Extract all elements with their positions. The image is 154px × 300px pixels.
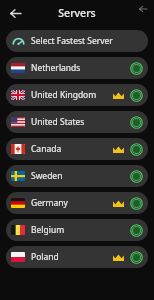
staticText: United Kingdom <box>31 89 97 101</box>
button[interactable]: Netherlands <box>6 57 148 79</box>
button[interactable]: Germany <box>6 192 148 214</box>
staticText: Belgium <box>31 224 65 236</box>
staticText: Poland <box>31 251 59 263</box>
button[interactable]: Sweden <box>6 165 148 187</box>
button[interactable]: Canada <box>6 138 148 160</box>
staticText: Canada <box>31 143 62 155</box>
staticText: Netherlands <box>31 62 81 74</box>
button[interactable]: United States <box>6 111 148 133</box>
button[interactable]: Select Fastest Server <box>6 30 148 52</box>
staticText: Germany <box>31 197 68 209</box>
staticText: Select Fastest Server <box>31 35 113 47</box>
staticText: Sweden <box>31 170 63 182</box>
staticText: Servers <box>58 6 96 20</box>
button[interactable]: Back <box>136 2 150 16</box>
button[interactable]: Poland <box>6 246 148 268</box>
button[interactable]: Belgium <box>6 219 148 241</box>
staticText: United States <box>31 116 85 128</box>
button[interactable]: United Kingdom <box>6 84 148 106</box>
button[interactable]: Back <box>5 3 25 23</box>
